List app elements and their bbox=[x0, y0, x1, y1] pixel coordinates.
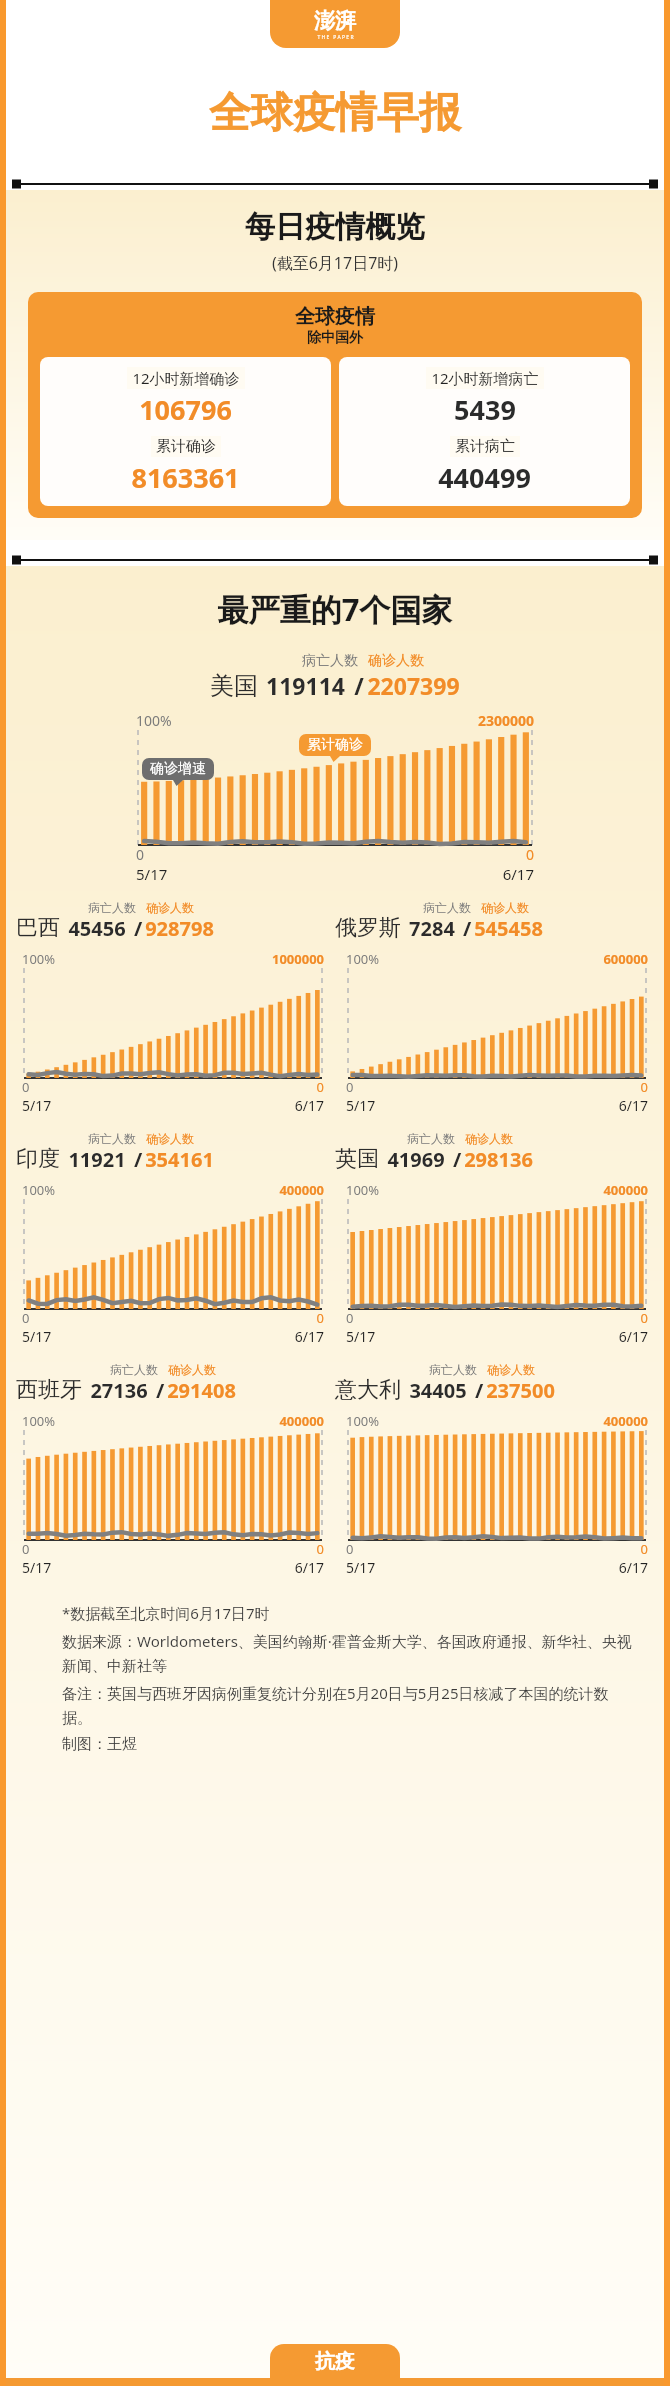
staticText: / bbox=[126, 915, 145, 942]
staticText: 0 bbox=[22, 1078, 30, 1096]
staticText: 291408 bbox=[167, 1377, 236, 1404]
staticText: 每日疫情概览 bbox=[6, 208, 664, 246]
staticText: 400000 bbox=[603, 1181, 648, 1199]
staticText: 100% bbox=[22, 950, 56, 968]
staticText: 237500 bbox=[486, 1377, 555, 1404]
staticText: 0 bbox=[136, 845, 145, 864]
staticText: 累计确诊 bbox=[307, 736, 363, 754]
staticText: 病亡人数 bbox=[302, 652, 358, 670]
staticText: 100% bbox=[346, 1181, 380, 1199]
staticText: 病亡人数 bbox=[88, 1131, 136, 1146]
staticText: 病亡人数 bbox=[429, 1362, 477, 1377]
staticText: 西班牙 bbox=[16, 1376, 82, 1404]
staticText: 600000 bbox=[603, 950, 648, 968]
staticText: 0 bbox=[640, 1078, 648, 1096]
staticText: 545458 bbox=[474, 915, 543, 942]
staticText: 英国 bbox=[335, 1145, 379, 1173]
staticText: 5/17 bbox=[22, 1558, 52, 1577]
staticText: 确诊增速 bbox=[150, 760, 206, 778]
staticText: 2300000 bbox=[477, 711, 534, 730]
button[interactable]: 12小时新增病亡 bbox=[339, 357, 630, 506]
staticText: 0 bbox=[525, 845, 534, 864]
staticText: 5439 bbox=[454, 391, 516, 428]
staticText: 6/17 bbox=[294, 1558, 324, 1577]
staticText: 354161 bbox=[145, 1146, 214, 1173]
staticText: (截至6月17日7时) bbox=[6, 252, 664, 274]
staticText: 0 bbox=[22, 1309, 30, 1327]
staticText: 298136 bbox=[464, 1146, 533, 1173]
staticText: *数据截至北京时间6月17日7时 bbox=[62, 1603, 634, 1623]
staticText: 34405 bbox=[409, 1377, 467, 1404]
staticText: 0 bbox=[316, 1078, 324, 1096]
staticText: 11921 bbox=[68, 1146, 126, 1173]
staticText: 确诊人数 bbox=[465, 1131, 513, 1146]
staticText: 5/17 bbox=[346, 1096, 376, 1115]
staticText: 制图：王煜 bbox=[62, 1735, 634, 1754]
staticText: 5/17 bbox=[22, 1327, 52, 1346]
staticText: 400000 bbox=[603, 1412, 648, 1430]
staticText: 0 bbox=[346, 1309, 354, 1327]
staticText: 俄罗斯 bbox=[335, 914, 401, 942]
staticText: 确诊人数 bbox=[146, 900, 194, 915]
staticText: 5/17 bbox=[136, 864, 168, 884]
staticText: 0 bbox=[346, 1540, 354, 1558]
staticText: 8163361 bbox=[131, 459, 240, 496]
staticText: 0 bbox=[22, 1540, 30, 1558]
staticText: 病亡人数 bbox=[88, 900, 136, 915]
staticText: 440499 bbox=[438, 459, 531, 496]
staticText: 巴西 bbox=[16, 914, 60, 942]
staticText: 0 bbox=[640, 1309, 648, 1327]
staticText: 119114 bbox=[266, 670, 345, 701]
staticText: T H E P A P E R bbox=[317, 34, 354, 41]
staticText: 7284 bbox=[409, 915, 455, 942]
staticText: 100% bbox=[22, 1181, 56, 1199]
staticText: 6/17 bbox=[618, 1558, 648, 1577]
staticText: 确诊人数 bbox=[487, 1362, 535, 1377]
staticText: / bbox=[445, 1146, 464, 1173]
staticText: 2207399 bbox=[367, 670, 460, 701]
staticText: 100% bbox=[346, 1412, 380, 1430]
staticText: 病亡人数 bbox=[423, 900, 471, 915]
staticText: 100% bbox=[22, 1412, 56, 1430]
staticText: 确诊人数 bbox=[368, 652, 424, 670]
button[interactable]: 抗疫 bbox=[270, 2344, 400, 2378]
staticText: 除中国外 bbox=[307, 329, 363, 347]
staticText: 41969 bbox=[387, 1146, 445, 1173]
staticText: / bbox=[467, 1377, 486, 1404]
staticText: 5/17 bbox=[346, 1327, 376, 1346]
staticText: 6/17 bbox=[294, 1327, 324, 1346]
staticText: 数据来源：Worldometers、美国约翰斯·霍普金斯大学、各国政府通报、新华… bbox=[62, 1631, 634, 1675]
button[interactable]: 12小时新增确诊 bbox=[40, 357, 331, 506]
staticText: 1000000 bbox=[271, 950, 324, 968]
staticText: 确诊人数 bbox=[168, 1362, 216, 1377]
staticText: 5/17 bbox=[346, 1558, 376, 1577]
staticText: 5/17 bbox=[22, 1096, 52, 1115]
staticText: 100% bbox=[346, 950, 380, 968]
staticText: / bbox=[126, 1146, 145, 1173]
staticText: 全球疫情早报 bbox=[209, 87, 461, 140]
staticText: 抗疫 bbox=[315, 2349, 355, 2374]
staticText: 12小时新增病亡 bbox=[431, 368, 539, 388]
staticText: 0 bbox=[640, 1540, 648, 1558]
staticText: 意大利 bbox=[335, 1376, 401, 1404]
staticText: 备注：英国与西班牙因病例重复统计分别在5月20日与5月25日核减了本国的统计数据… bbox=[62, 1683, 634, 1727]
staticText: 27136 bbox=[90, 1377, 148, 1404]
staticText: 累计病亡 bbox=[455, 437, 515, 456]
staticText: 累计确诊 bbox=[156, 437, 216, 456]
staticText: 400000 bbox=[279, 1412, 324, 1430]
staticText: 6/17 bbox=[502, 864, 534, 884]
staticText: / bbox=[455, 915, 474, 942]
staticText: 最严重的7个国家 bbox=[6, 588, 664, 630]
staticText: 928798 bbox=[145, 915, 214, 942]
staticText: 106796 bbox=[139, 391, 232, 428]
button[interactable]: 全球疫情 bbox=[28, 292, 642, 518]
staticText: 确诊人数 bbox=[146, 1131, 194, 1146]
staticText: 100% bbox=[136, 711, 172, 730]
staticText: 确诊人数 bbox=[481, 900, 529, 915]
staticText: 病亡人数 bbox=[407, 1131, 455, 1146]
staticText: 12小时新增确诊 bbox=[132, 368, 240, 388]
staticText: 45456 bbox=[68, 915, 126, 942]
button[interactable]: The Paper logo bbox=[270, 0, 400, 48]
staticText: / bbox=[148, 1377, 167, 1404]
staticText: 澎湃 bbox=[314, 8, 356, 34]
